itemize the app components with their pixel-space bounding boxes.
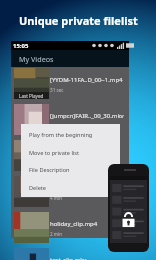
staticText: Last Played <box>19 93 44 99</box>
staticText: My Videos <box>19 54 54 64</box>
button[interactable]: Move to private list <box>21 144 120 162</box>
staticText: holiday_clip.mp4 <box>50 220 98 228</box>
button[interactable]: holiday_clip.mp4 <box>11 212 129 248</box>
staticText: File Description <box>29 166 70 174</box>
staticText: test_clip.mkv <box>50 256 87 260</box>
other: Private locked phone <box>108 164 149 252</box>
button[interactable]: movie_sample.avi <box>11 176 129 212</box>
staticText: [YYDM-11FA..D_00~1.mp4 <box>50 76 123 84</box>
staticText: 2 min <box>50 231 63 237</box>
staticText: 4 min <box>50 195 63 201</box>
staticText: Play from the beginning <box>29 131 93 139</box>
staticText: 30 min <box>50 123 65 129</box>
staticText: Move to private list <box>29 149 80 157</box>
staticText: Delete <box>29 184 47 192</box>
button[interactable]: File Description <box>21 161 120 179</box>
staticText: 31 sec <box>50 87 64 93</box>
button[interactable]: video_2014_03.mp4 <box>11 140 129 176</box>
button[interactable]: Play from the beginning <box>21 126 120 144</box>
button[interactable]: Last Played <box>11 68 129 104</box>
staticText: video_2014_03.mp4 <box>50 148 106 156</box>
staticText: Unique private filelist <box>19 13 138 28</box>
staticText: 15:05 <box>13 42 29 50</box>
button[interactable]: test_clip.mkv <box>11 248 129 260</box>
button[interactable]: Delete <box>21 179 120 197</box>
staticText: [jumpcn]FAIR.._00_30.mkv <box>50 112 124 120</box>
button[interactable]: [jumpcn]FAIR.._00_30.mkv <box>11 104 129 140</box>
